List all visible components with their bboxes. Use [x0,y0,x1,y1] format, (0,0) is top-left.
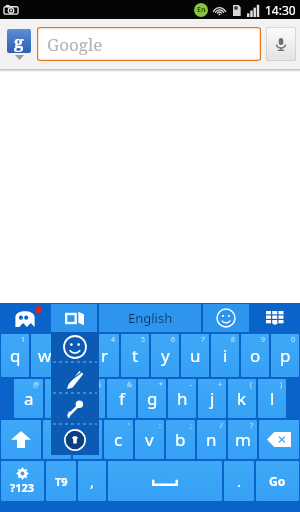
button[interactable]: j [198,379,226,418]
staticText: d [85,387,96,410]
staticText: + [218,380,223,390]
staticText: . [237,471,242,491]
button[interactable]: Backspace [259,420,299,459]
staticText: 6 [171,335,176,345]
button[interactable]: Shift [1,420,41,459]
button[interactable]: v [135,420,164,459]
staticText: 0 [291,335,296,345]
button[interactable]: k [228,379,256,418]
button[interactable]: y [151,334,179,377]
staticText: 14:30 [265,2,296,18]
staticText: g [147,387,158,410]
button[interactable]: d [76,379,105,418]
staticText: 7 [201,335,206,345]
button[interactable]: English [99,304,201,332]
button[interactable]: Voice input [51,394,99,424]
staticText: ; [190,421,192,431]
button[interactable]: Switch keyboard [51,304,97,332]
staticText: h [177,387,188,410]
button[interactable]: l [258,379,286,418]
button[interactable]: a [14,379,43,418]
button[interactable]: n [197,420,226,459]
staticText: q [10,344,21,367]
button[interactable]: Handwriting [51,363,99,393]
button[interactable]: x [73,420,102,459]
staticText: / [220,421,223,431]
staticText: j [210,387,215,410]
staticText: p [280,344,291,367]
staticText: 3 [81,335,86,345]
button[interactable]: Google search source [4,19,34,69]
staticText: x [83,428,92,451]
button[interactable]: e [61,334,89,377]
staticText: English [128,309,173,327]
staticText: En [197,5,206,15]
staticText: l [270,387,275,410]
staticText: - [190,380,193,390]
button[interactable]: Go [256,461,299,501]
staticText: u [190,344,201,367]
staticText: f [119,387,125,410]
button[interactable]: q [1,334,29,377]
button[interactable]: g [138,379,166,418]
staticText: Go [269,473,286,489]
button[interactable]: T9 [46,461,76,501]
button[interactable]: s [45,379,74,418]
staticText: c [114,428,123,451]
button[interactable]: i [211,334,239,377]
button[interactable]: Voice search [266,27,296,61]
staticText: ) [280,380,283,390]
button[interactable]: Emoji [203,304,249,332]
button[interactable]: b [166,420,195,459]
button[interactable]: o [241,334,269,377]
staticText: y [161,344,170,367]
staticText: ( [250,380,253,390]
button[interactable]: t [121,334,149,377]
staticText: 8 [231,335,236,345]
button[interactable]: r [91,334,119,377]
staticText: 1 [21,335,26,345]
button[interactable]: Emoji [51,332,99,362]
button[interactable]: h [168,379,196,418]
staticText: i [223,344,228,367]
staticText: e [70,344,80,367]
staticText: 9 [261,335,266,345]
staticText: Google [47,33,103,56]
button[interactable]: Symbols and settings [1,461,44,501]
staticText: * [159,380,163,390]
staticText: ' [128,421,130,431]
staticText: $ [97,380,102,390]
staticText: m [235,428,251,451]
staticText: a [24,387,34,410]
button[interactable]: Theme [0,303,50,333]
staticText: s [55,387,64,410]
staticText: 5 [141,335,146,345]
button[interactable]: Space [108,461,222,501]
button[interactable]: Google [37,27,261,61]
button[interactable]: . [224,461,254,501]
button[interactable]: p [271,334,299,377]
staticText: t [132,344,139,367]
staticText: @ [33,380,40,390]
staticText: n [206,428,217,451]
button[interactable]: m [228,420,257,459]
staticText: & [127,380,133,390]
staticText: ? [250,421,254,431]
staticText: ?123 [10,480,35,495]
staticText: : [159,421,161,431]
button[interactable]: Hide keyboard [250,303,300,333]
staticText: 4 [111,335,116,345]
button[interactable]: Clipboard [51,425,99,455]
button[interactable]: , [78,461,106,501]
staticText: r [101,344,109,367]
button[interactable]: u [181,334,209,377]
staticText: b [175,428,186,451]
button[interactable]: z [43,420,71,459]
staticText: T9 [55,474,68,489]
staticText: # [66,380,71,390]
button[interactable]: c [104,420,133,459]
button[interactable]: w [31,334,59,377]
staticText: w [38,344,52,367]
button[interactable]: f [107,379,136,418]
